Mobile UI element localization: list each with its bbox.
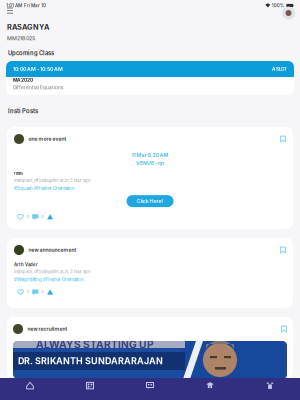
staticText: ALWAYS STARTING UP [36, 338, 154, 351]
button[interactable]: Like [17, 288, 24, 295]
button[interactable]: Comment [32, 213, 39, 220]
button[interactable]: Messages [120, 378, 180, 400]
button[interactable]: Share [47, 288, 54, 295]
button[interactable]: Save post [280, 136, 286, 142]
button[interactable]: Scan code [60, 378, 120, 400]
button[interactable]: Share [47, 213, 54, 220]
button[interactable]: Click Here! [126, 195, 173, 207]
staticText: A SLOT [272, 66, 287, 72]
button[interactable]: Save post [280, 247, 286, 253]
button[interactable]: Academics [180, 378, 240, 400]
staticText: new recruitment [27, 326, 67, 332]
staticText: #Squash #Fresher Orientation [14, 186, 75, 191]
button[interactable]: Comment [32, 288, 39, 295]
staticText: Insti Posts [8, 107, 38, 115]
staticText: instispace_officials@iitm.ac.in, 3 hour … [14, 269, 90, 274]
staticText: MM21B025 [7, 35, 35, 41]
staticText: Arth Vader [14, 262, 38, 267]
staticText: 11 Mar 9.20 AM [131, 152, 168, 158]
staticText: Differential Equations [13, 84, 64, 90]
staticText: 1:01 AM Fri Mar 10 [6, 3, 46, 8]
staticText: 0 [26, 214, 29, 219]
staticText: RASAGNYA [7, 23, 49, 31]
staticText: Upcoming Class [8, 49, 54, 57]
staticText: MA2020 [13, 77, 33, 83]
staticText: 100% [272, 3, 285, 8]
button[interactable]: Profile [282, 6, 295, 19]
staticText: 0 [41, 214, 44, 219]
button[interactable]: Store [240, 378, 300, 400]
staticText: from: [14, 171, 23, 176]
staticText: Click Here! [136, 198, 163, 204]
staticText: one more event [28, 136, 66, 142]
staticText: new announcement [28, 247, 76, 253]
staticText: 0 [41, 289, 44, 294]
staticText: #Weightlifting #Fresher Orientation [14, 277, 84, 282]
staticText: 10:00 AM - 10:50 AM [13, 66, 63, 72]
staticText: instispace_officials@iitm.ac.in, 3 hour … [14, 178, 90, 183]
button[interactable]: Menu [7, 7, 16, 15]
staticText: 0 [26, 289, 29, 294]
button[interactable]: Like [17, 213, 24, 220]
button[interactable]: Save post [281, 326, 287, 332]
button[interactable]: Home [0, 378, 60, 400]
staticText: VENUE - rjn [136, 160, 164, 166]
staticText: DR. SRIKANTH SUNDARARAJAN [18, 356, 163, 366]
